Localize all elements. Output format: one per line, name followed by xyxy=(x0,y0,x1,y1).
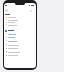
button[interactable] xyxy=(4,51,36,54)
button[interactable] xyxy=(4,36,36,39)
button[interactable] xyxy=(4,29,36,33)
button[interactable] xyxy=(4,44,36,47)
button[interactable] xyxy=(4,47,36,50)
button[interactable]: Menu xyxy=(5,9,8,12)
button[interactable] xyxy=(4,33,36,36)
button[interactable] xyxy=(4,19,36,22)
button[interactable] xyxy=(4,40,36,43)
button[interactable] xyxy=(4,16,36,19)
button[interactable] xyxy=(4,21,36,24)
button[interactable] xyxy=(4,24,36,27)
button[interactable] xyxy=(4,54,36,57)
